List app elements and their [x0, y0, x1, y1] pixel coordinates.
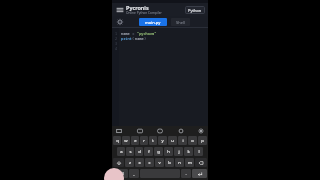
button[interactable]: ,	[129, 169, 139, 178]
button[interactable]: Shift	[113, 158, 124, 167]
button[interactable]: o	[188, 136, 197, 145]
button[interactable]: e	[131, 136, 139, 145]
button[interactable]: f	[144, 147, 153, 156]
button[interactable]: main.py	[139, 18, 167, 26]
button[interactable]: b	[165, 158, 174, 167]
button[interactable]: z	[125, 158, 134, 167]
button[interactable]: u	[168, 136, 177, 145]
staticText: x	[138, 160, 141, 166]
staticText: 2	[114, 36, 117, 41]
button[interactable]: p	[198, 136, 207, 145]
button[interactable]: k	[184, 147, 193, 156]
button[interactable]: j	[174, 147, 183, 156]
staticText: m	[188, 160, 192, 166]
button[interactable]: Settings	[197, 127, 205, 135]
button[interactable]: l	[194, 147, 203, 156]
staticText: r	[143, 138, 145, 144]
staticText: .	[185, 171, 187, 177]
staticText: e	[134, 138, 137, 144]
button[interactable]: .	[181, 169, 191, 178]
button[interactable]: v	[155, 158, 164, 167]
staticText: ,	[133, 171, 135, 177]
staticText: 4	[114, 46, 117, 51]
button[interactable]: m	[185, 158, 194, 167]
staticText: Online Python Compiler	[126, 11, 162, 15]
button[interactable]: w	[122, 136, 130, 145]
staticText: w	[124, 138, 128, 144]
staticText: n	[178, 160, 181, 166]
staticText: 1	[114, 31, 117, 36]
staticText: main.py	[145, 20, 161, 25]
staticText: (	[132, 36, 135, 41]
button[interactable]: Settings	[115, 17, 124, 26]
staticText: f	[148, 149, 150, 155]
staticText: 3	[114, 41, 117, 46]
staticText: Python	[188, 8, 202, 13]
button[interactable]: ?123	[113, 169, 128, 178]
staticText: j	[178, 149, 180, 155]
staticText: t	[152, 138, 154, 144]
staticText: a	[120, 149, 123, 155]
staticText: l	[198, 149, 200, 155]
staticText: Shell	[176, 20, 185, 25]
staticText: d	[138, 149, 141, 155]
staticText: print	[121, 36, 132, 41]
staticText: "pycharm"	[137, 31, 157, 36]
button[interactable]: Menu	[115, 5, 124, 14]
button[interactable]: Shell	[171, 18, 190, 26]
button[interactable]: g	[154, 147, 163, 156]
staticText: z	[129, 160, 131, 166]
button[interactable]: y	[158, 136, 167, 145]
button[interactable]: d	[135, 147, 143, 156]
staticText: ?123	[117, 172, 124, 176]
staticText: Pycronis	[126, 4, 149, 11]
button[interactable]: Emoji	[177, 127, 185, 135]
button[interactable]: s	[126, 147, 134, 156]
button[interactable]: q	[113, 136, 121, 145]
staticText: i	[182, 138, 184, 144]
staticText: )	[144, 36, 147, 41]
staticText: h	[167, 149, 170, 155]
button[interactable]: name	[119, 28, 208, 126]
button[interactable]: x	[135, 158, 144, 167]
staticText: y	[161, 138, 164, 144]
button[interactable]: Keyboard layouts	[115, 127, 123, 135]
button[interactable]: Enter	[192, 169, 207, 178]
staticText: =	[130, 31, 137, 36]
button[interactable]: c	[145, 158, 154, 167]
staticText: name	[135, 36, 144, 41]
button[interactable]: h	[164, 147, 173, 156]
staticText: name	[121, 31, 130, 36]
staticText: g	[157, 149, 160, 155]
button[interactable]: Backspace	[195, 158, 207, 167]
button[interactable]: Stickers	[156, 127, 164, 135]
button[interactable]: i	[178, 136, 187, 145]
staticText: p	[201, 138, 204, 144]
button[interactable]: n	[175, 158, 184, 167]
button[interactable]: Python	[185, 6, 205, 14]
staticText: k	[187, 149, 190, 155]
staticText: b	[168, 160, 171, 166]
staticText: s	[129, 149, 132, 155]
button[interactable]: a	[117, 147, 125, 156]
button[interactable]: GIF	[136, 127, 144, 135]
staticText: u	[171, 138, 174, 144]
staticText: c	[148, 160, 151, 166]
staticText: o	[191, 138, 194, 144]
button[interactable]: r	[140, 136, 148, 145]
button[interactable]: t	[149, 136, 157, 145]
staticText: v	[158, 160, 161, 166]
staticText: q	[116, 138, 119, 144]
